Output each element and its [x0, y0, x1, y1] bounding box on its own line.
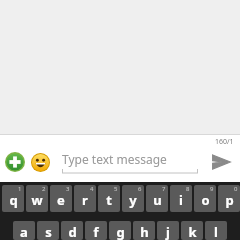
staticText: w: [31, 191, 43, 209]
staticText: p: [225, 191, 234, 209]
button[interactable]: u: [146, 185, 168, 212]
staticText: s: [45, 223, 52, 240]
button[interactable]: h: [133, 221, 155, 240]
staticText: 5: [114, 185, 118, 193]
staticText: h: [140, 223, 149, 240]
button[interactable]: i: [170, 185, 192, 212]
button[interactable]: e: [50, 185, 72, 212]
button[interactable]: t: [98, 185, 120, 212]
button[interactable]: r: [74, 185, 96, 212]
staticText: k: [188, 223, 197, 240]
button[interactable]: Type text message: [62, 147, 198, 177]
staticText: d: [68, 223, 77, 240]
button[interactable]: q: [2, 185, 24, 212]
staticText: l: [214, 223, 218, 240]
button[interactable]: p: [218, 185, 240, 212]
button[interactable]: o: [194, 185, 216, 212]
button[interactable]: j: [157, 221, 179, 240]
staticText: y: [129, 191, 137, 209]
button[interactable]: l: [205, 221, 227, 240]
button[interactable]: w: [26, 185, 48, 212]
staticText: i: [179, 191, 183, 209]
staticText: 160/1: [215, 137, 234, 147]
staticText: Type text message: [62, 151, 167, 167]
button[interactable]: Send: [206, 147, 236, 177]
staticText: 4: [90, 185, 94, 193]
button[interactable]: s: [37, 221, 59, 240]
staticText: 7: [162, 185, 166, 193]
staticText: j: [166, 223, 170, 240]
staticText: o: [201, 191, 210, 209]
button[interactable]: f: [85, 221, 107, 240]
staticText: 1: [18, 185, 22, 193]
staticText: 0: [234, 185, 238, 193]
staticText: g: [116, 223, 125, 240]
staticText: 8: [186, 185, 190, 193]
staticText: 6: [138, 185, 142, 193]
button[interactable]: Insert emoji: [28, 150, 52, 174]
button[interactable]: y: [122, 185, 144, 212]
staticText: a: [20, 223, 28, 240]
button[interactable]: a: [13, 221, 35, 240]
staticText: 2: [42, 185, 46, 193]
staticText: q: [9, 191, 18, 209]
button[interactable]: d: [61, 221, 83, 240]
staticText: e: [57, 191, 65, 209]
staticText: t: [106, 191, 112, 209]
staticText: u: [153, 191, 162, 209]
button[interactable]: g: [109, 221, 131, 240]
button[interactable]: Add attachment: [3, 150, 27, 174]
staticText: f: [93, 223, 99, 240]
staticText: r: [82, 191, 88, 209]
button[interactable]: k: [181, 221, 203, 240]
staticText: 3: [66, 185, 70, 193]
staticText: 9: [210, 185, 214, 193]
